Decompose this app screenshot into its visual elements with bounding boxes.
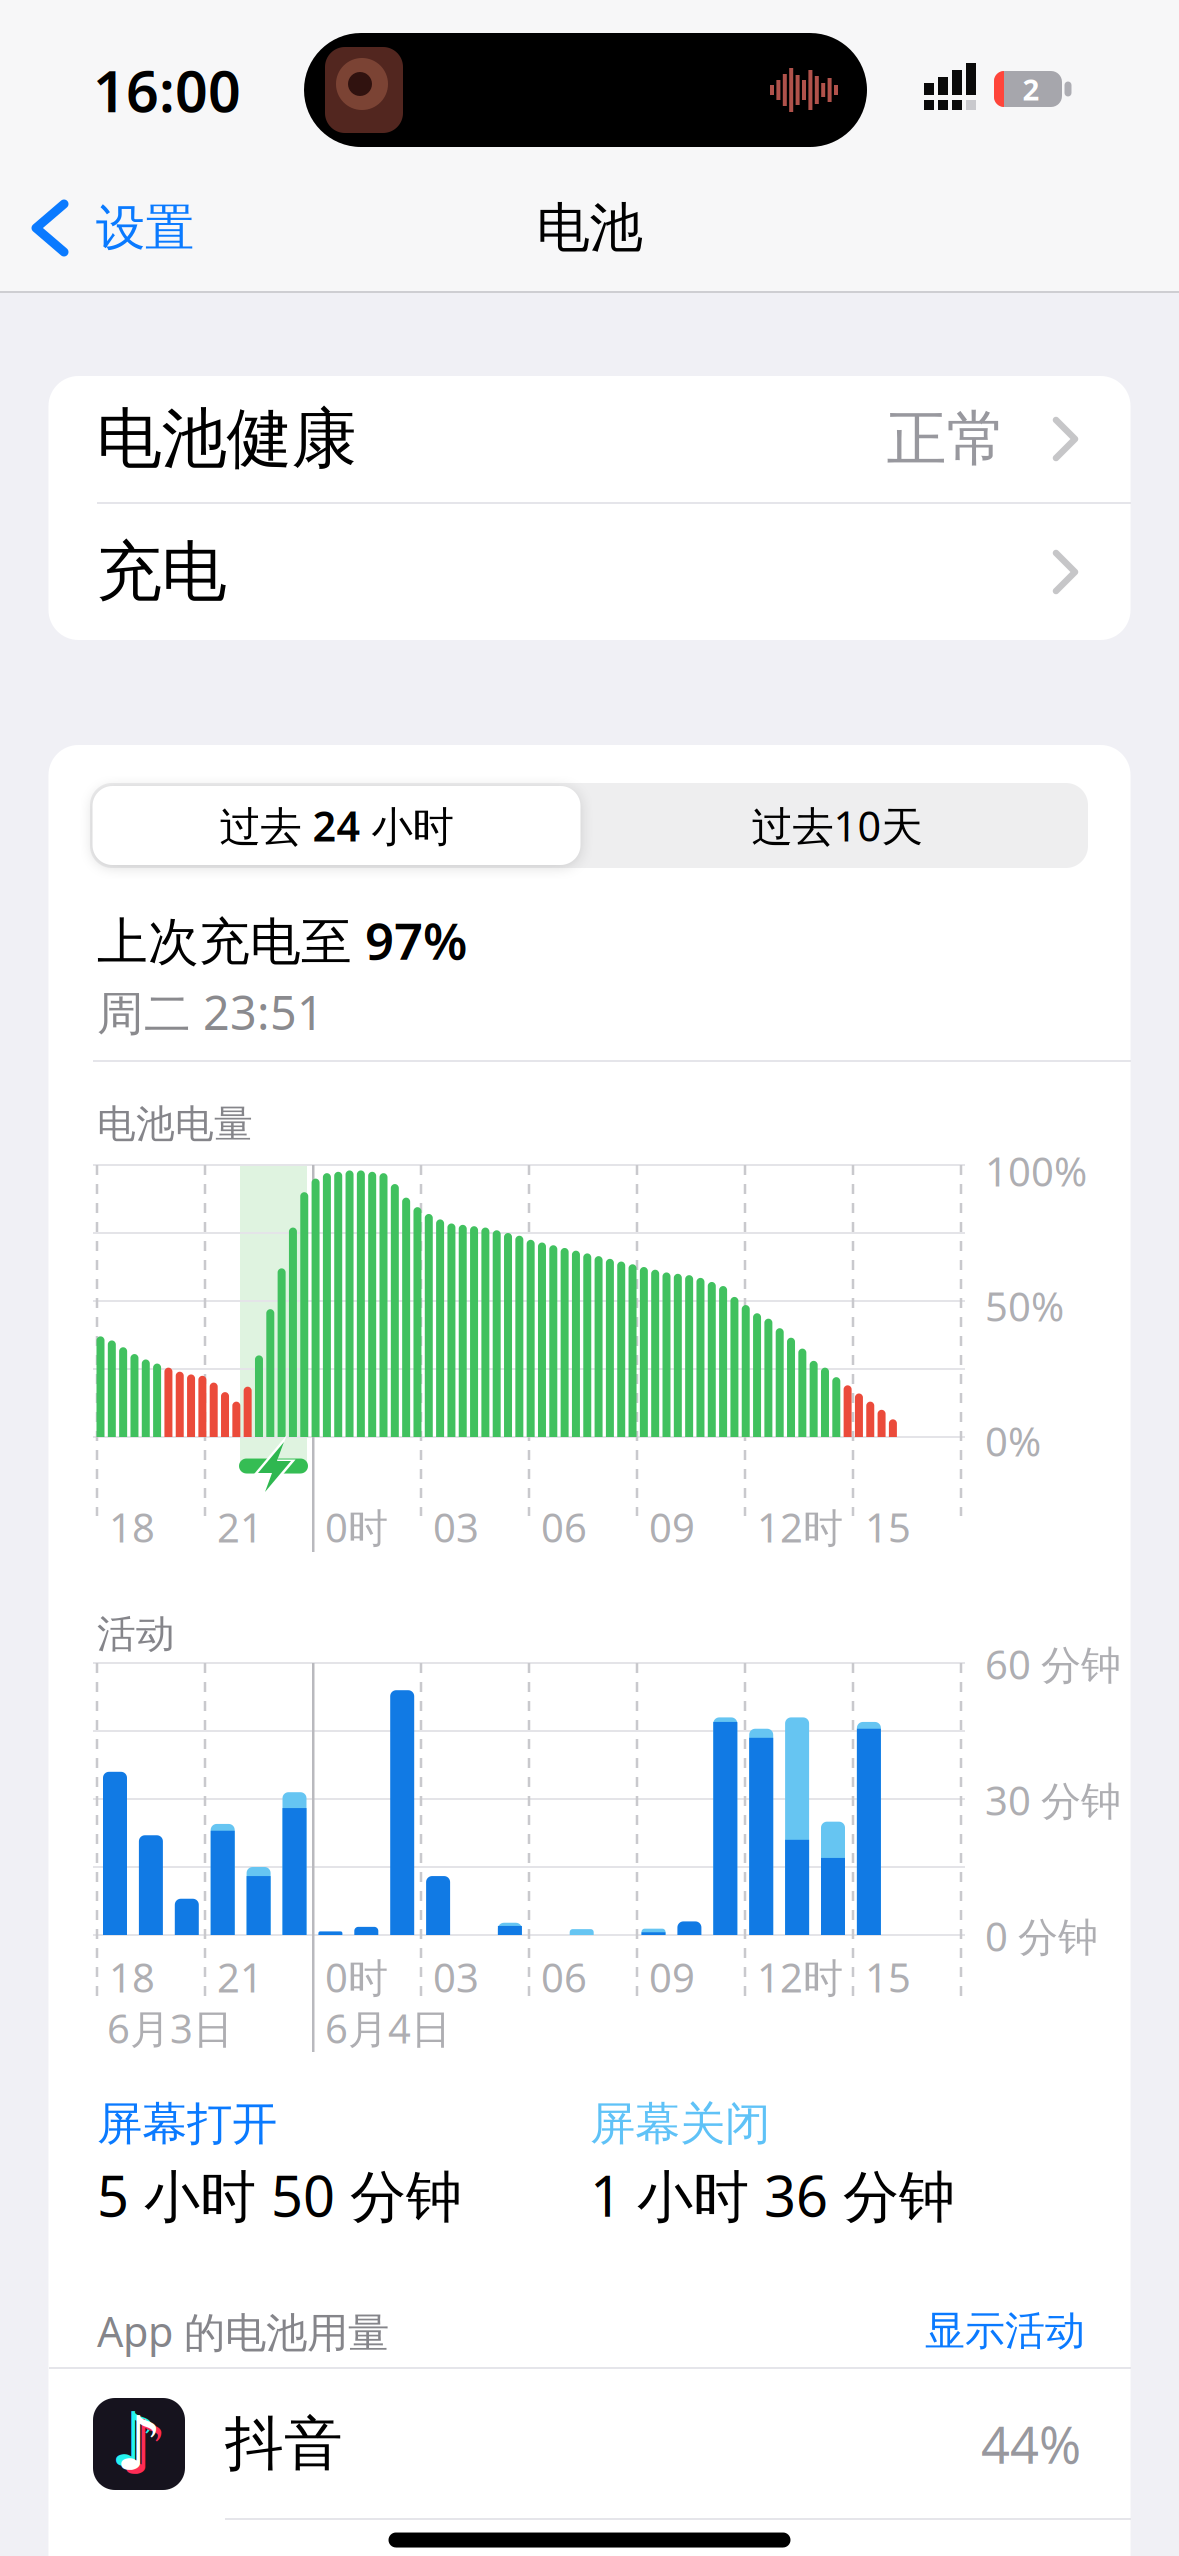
staticText: 屏幕打开: [97, 2096, 277, 2152]
button[interactable]: 显示活动: [785, 2306, 1085, 2355]
staticText: 09: [649, 1500, 695, 1553]
staticText: 1 小时 36 分钟: [590, 2158, 955, 2232]
staticText: 抖音: [225, 2408, 343, 2480]
button[interactable]: 过去10天: [594, 786, 1080, 865]
staticText: 0%: [985, 1414, 1041, 1467]
staticText: 上次充电至 97%: [97, 906, 467, 974]
staticText: 03: [433, 1950, 479, 2003]
staticText: App 的电池用量: [97, 2303, 389, 2358]
staticText: 50%: [985, 1279, 1064, 1332]
staticText: 60 分钟: [985, 1637, 1121, 1690]
button[interactable]: 返回设置: [28, 183, 238, 273]
staticText: 06: [541, 1950, 587, 2003]
staticText: 15: [865, 1950, 911, 2003]
staticText: ♪: [120, 2406, 168, 2490]
button[interactable]: 充电: [96, 505, 1130, 639]
staticText: 电池电量: [97, 1100, 253, 1148]
staticText: 44%: [981, 2410, 1081, 2478]
button[interactable]: 电池健康: [96, 376, 1130, 502]
staticText: 周二 23:51: [97, 981, 324, 1043]
staticText: 正常: [886, 402, 1006, 476]
staticText: 设置: [96, 198, 194, 258]
staticText: 2: [1022, 69, 1039, 108]
button[interactable]: ♪: [93, 2369, 1081, 2519]
staticText: 12时: [757, 1500, 843, 1553]
staticText: 充电: [96, 532, 226, 612]
staticText: 过去 24 小时: [219, 798, 453, 853]
staticText: 6月4日: [325, 2001, 451, 2054]
staticText: 06: [541, 1500, 587, 1553]
staticText: 30 分钟: [985, 1773, 1121, 1826]
staticText: 09: [649, 1950, 695, 2003]
staticText: 03: [433, 1500, 479, 1553]
staticText: 21: [217, 1500, 263, 1553]
staticText: 16:00: [93, 52, 241, 128]
staticText: 6月3日: [107, 2001, 233, 2054]
staticText: 显示活动: [925, 2306, 1085, 2355]
staticText: 电池: [536, 195, 642, 261]
staticText: 0时: [325, 1950, 388, 2003]
staticText: 15: [865, 1500, 911, 1553]
staticText: 过去10天: [751, 798, 922, 853]
staticText: 0 分钟: [985, 1909, 1098, 1962]
staticText: 18: [109, 1500, 155, 1553]
staticText: 电池健康: [96, 399, 356, 479]
staticText: 屏幕关闭: [590, 2096, 770, 2152]
staticText: 12时: [757, 1950, 843, 2003]
staticText: ♪: [115, 2402, 163, 2486]
button[interactable]: 过去 24 小时: [92, 786, 580, 865]
staticText: 0时: [325, 1500, 388, 1553]
staticText: 活动: [97, 1610, 175, 1658]
staticText: 21: [217, 1950, 263, 2003]
staticText: ♪: [110, 2398, 158, 2482]
staticText: 5 小时 50 分钟: [97, 2158, 462, 2232]
staticText: 100%: [985, 1144, 1087, 1197]
staticText: 18: [109, 1950, 155, 2003]
